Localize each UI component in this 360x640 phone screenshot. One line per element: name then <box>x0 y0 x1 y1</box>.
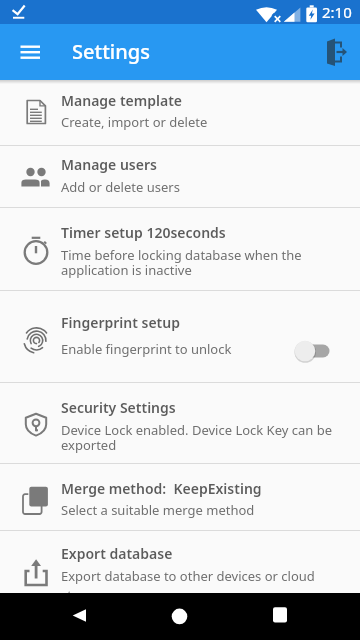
button[interactable]: Export database <box>0 531 360 612</box>
button[interactable]: Security Settings <box>0 383 360 464</box>
staticText: Fingerprint setup <box>61 313 180 332</box>
staticText: Security Settings <box>61 398 176 417</box>
staticText: Manage users <box>61 155 157 174</box>
staticText: Merge method: KeepExisting <box>61 479 262 498</box>
button[interactable]: Timer setup 120seconds <box>0 208 360 291</box>
button[interactable]: Merge method: KeepExisting <box>0 464 360 531</box>
staticText: Export database <box>61 544 173 563</box>
button[interactable]: Manage template <box>0 80 360 146</box>
staticText: Export database to other devices or clou… <box>61 567 315 603</box>
staticText: 2:10 <box>322 2 352 22</box>
staticText: Settings <box>72 38 150 65</box>
staticText: Enable fingerprint to unlock <box>61 340 232 358</box>
button[interactable]: Manage users <box>0 146 360 208</box>
staticText: Manage template <box>61 91 183 110</box>
staticText: Create, import or delete <box>61 113 208 131</box>
staticText: Select a suitable merge method <box>61 501 255 519</box>
button[interactable]: Fingerprint setup <box>0 291 360 383</box>
staticText: Time before locking database when the ap… <box>61 246 302 279</box>
button[interactable] <box>295 335 335 367</box>
staticText: Add or delete users <box>61 178 180 196</box>
button[interactable] <box>312 32 352 72</box>
button[interactable] <box>12 34 48 70</box>
staticText: Device Lock enabled. Device Lock Key can… <box>61 421 333 454</box>
staticText: Timer setup 120seconds <box>61 223 226 242</box>
button[interactable] <box>0 593 360 640</box>
